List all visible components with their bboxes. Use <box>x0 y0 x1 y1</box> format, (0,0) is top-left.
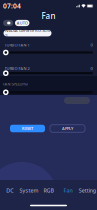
button[interactable]: AUTO <box>15 20 29 26</box>
button[interactable]: APPLY <box>50 125 85 132</box>
staticText: RESET <box>22 126 33 131</box>
staticText: Fan <box>63 187 72 194</box>
staticText: 07:04 <box>3 2 21 10</box>
staticText: Fan <box>41 10 55 21</box>
button[interactable]: RESET <box>10 125 45 132</box>
button[interactable]: Select device <box>3 30 51 36</box>
button[interactable]: System <box>19 180 39 201</box>
staticText: System <box>20 187 39 194</box>
staticText: APPLY <box>62 126 73 131</box>
staticText: RGB <box>43 187 53 194</box>
button[interactable]: Fan power <box>3 20 13 26</box>
staticText: DC <box>6 187 13 194</box>
staticText: 0 <box>90 42 92 48</box>
staticText: Setting <box>79 187 96 194</box>
button[interactable]: Setting <box>78 180 97 201</box>
button[interactable]: DC <box>0 180 19 201</box>
staticText: TURBO FAN 1 <box>4 42 29 48</box>
button[interactable]: Fan curve mode <box>64 97 90 104</box>
button[interactable]: Fan <box>58 180 78 201</box>
staticText: AUTO <box>17 20 28 26</box>
staticText: TURBO FAN 2 <box>4 66 29 71</box>
button[interactable]: RGB <box>39 180 58 201</box>
staticText: 0 <box>90 66 92 71</box>
staticText: NVIDIA GeForce RTX 3070 Ti <box>5 28 50 38</box>
staticText: FAN SPEED(%) <box>2 81 27 87</box>
